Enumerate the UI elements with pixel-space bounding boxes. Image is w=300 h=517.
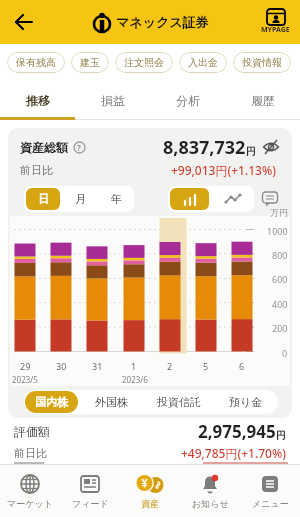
staticText: 投資情報 bbox=[242, 56, 282, 69]
staticText: 2023/5 bbox=[12, 374, 38, 385]
staticText: 2,975,945 bbox=[198, 420, 276, 443]
staticText: 円 bbox=[276, 429, 286, 442]
button[interactable]: 外国株 bbox=[79, 390, 143, 414]
button[interactable]: 日 bbox=[26, 188, 60, 210]
staticText: 800 bbox=[272, 249, 288, 261]
staticText: 月 bbox=[75, 192, 86, 206]
staticText: 前日比 bbox=[20, 163, 53, 177]
staticText: マーケット bbox=[7, 498, 53, 509]
button[interactable]: 預り金 bbox=[214, 390, 278, 414]
staticText: 8,837,732 bbox=[163, 135, 246, 160]
button[interactable]: 推移 bbox=[0, 80, 75, 120]
staticText: 投資信託 bbox=[157, 395, 201, 409]
button[interactable]: 損益 bbox=[75, 80, 150, 120]
staticText: 1 bbox=[131, 360, 137, 372]
staticText: 万円 bbox=[270, 207, 288, 218]
button[interactable] bbox=[10, 8, 38, 36]
staticText: 外国株 bbox=[95, 395, 128, 409]
staticText: 6 bbox=[239, 360, 245, 372]
button[interactable]: マーケット bbox=[0, 465, 60, 517]
button[interactable]: お知らせ bbox=[180, 465, 240, 517]
staticText: 5 bbox=[203, 360, 209, 372]
button[interactable]: MYPAGE bbox=[261, 9, 290, 35]
staticText: 分析 bbox=[176, 93, 200, 108]
button[interactable]: 入出金 bbox=[179, 52, 227, 73]
staticText: 31 bbox=[92, 360, 103, 372]
staticText: 2 bbox=[167, 360, 173, 372]
button[interactable]: 国内株 bbox=[25, 391, 78, 413]
staticText: 建玉 bbox=[80, 56, 100, 69]
button[interactable]: 注文照会 bbox=[115, 52, 173, 73]
staticText: 資産総額 bbox=[20, 140, 68, 155]
button[interactable] bbox=[170, 188, 209, 210]
staticText: 30 bbox=[56, 360, 67, 372]
button[interactable]: 年 bbox=[98, 186, 134, 212]
button[interactable]: フィード bbox=[60, 465, 120, 517]
button[interactable]: 保有残高 bbox=[7, 52, 65, 73]
staticText: 円 bbox=[246, 145, 256, 158]
button[interactable]: 投資信託 bbox=[143, 390, 214, 414]
staticText: 400 bbox=[272, 298, 288, 310]
staticText: 損益 bbox=[101, 93, 125, 108]
staticText: フィード bbox=[72, 498, 109, 509]
staticText: 注文照会 bbox=[124, 56, 164, 69]
button[interactable] bbox=[262, 191, 278, 207]
staticText: 推移 bbox=[26, 93, 50, 108]
staticText: 200 bbox=[272, 322, 288, 334]
staticText: 国内株 bbox=[35, 395, 68, 409]
button[interactable] bbox=[211, 186, 254, 212]
staticText: 年 bbox=[111, 192, 122, 206]
staticText: +99,013円(+1.13%) bbox=[171, 162, 276, 178]
staticText: マネックス証券 bbox=[116, 14, 209, 30]
staticText: 2023/6 bbox=[122, 374, 148, 385]
button[interactable]: マネックス証券 bbox=[91, 11, 209, 33]
staticText: お知らせ bbox=[192, 498, 229, 509]
button[interactable] bbox=[262, 138, 280, 156]
staticText: 1000 bbox=[267, 225, 288, 237]
button[interactable]: 資産 bbox=[120, 465, 180, 517]
staticText: メニュー bbox=[252, 498, 289, 509]
staticText: 入出金 bbox=[188, 56, 218, 69]
staticText: 600 bbox=[272, 273, 288, 285]
button[interactable]: メニュー bbox=[240, 465, 300, 517]
button[interactable]: 履歴 bbox=[225, 80, 300, 120]
staticText: MYPAGE bbox=[261, 25, 290, 35]
staticText: 保有残高 bbox=[16, 56, 56, 69]
staticText: 預り金 bbox=[229, 395, 263, 409]
staticText: 29 bbox=[20, 360, 31, 372]
staticText: 0 bbox=[282, 347, 288, 359]
staticText: 資産 bbox=[141, 498, 159, 509]
staticText: ? bbox=[77, 142, 81, 153]
staticText: +49,785円(+1.70%) bbox=[181, 445, 286, 461]
staticText: 前日比 bbox=[14, 446, 47, 460]
button[interactable]: 投資情報 bbox=[233, 52, 291, 73]
button[interactable]: 建玉 bbox=[71, 52, 109, 73]
button[interactable]: 分析 bbox=[150, 80, 225, 120]
staticText: 履歴 bbox=[251, 93, 275, 108]
staticText: 日 bbox=[38, 192, 49, 206]
staticText: 評価額 bbox=[14, 424, 50, 439]
button[interactable]: 月 bbox=[62, 186, 98, 212]
